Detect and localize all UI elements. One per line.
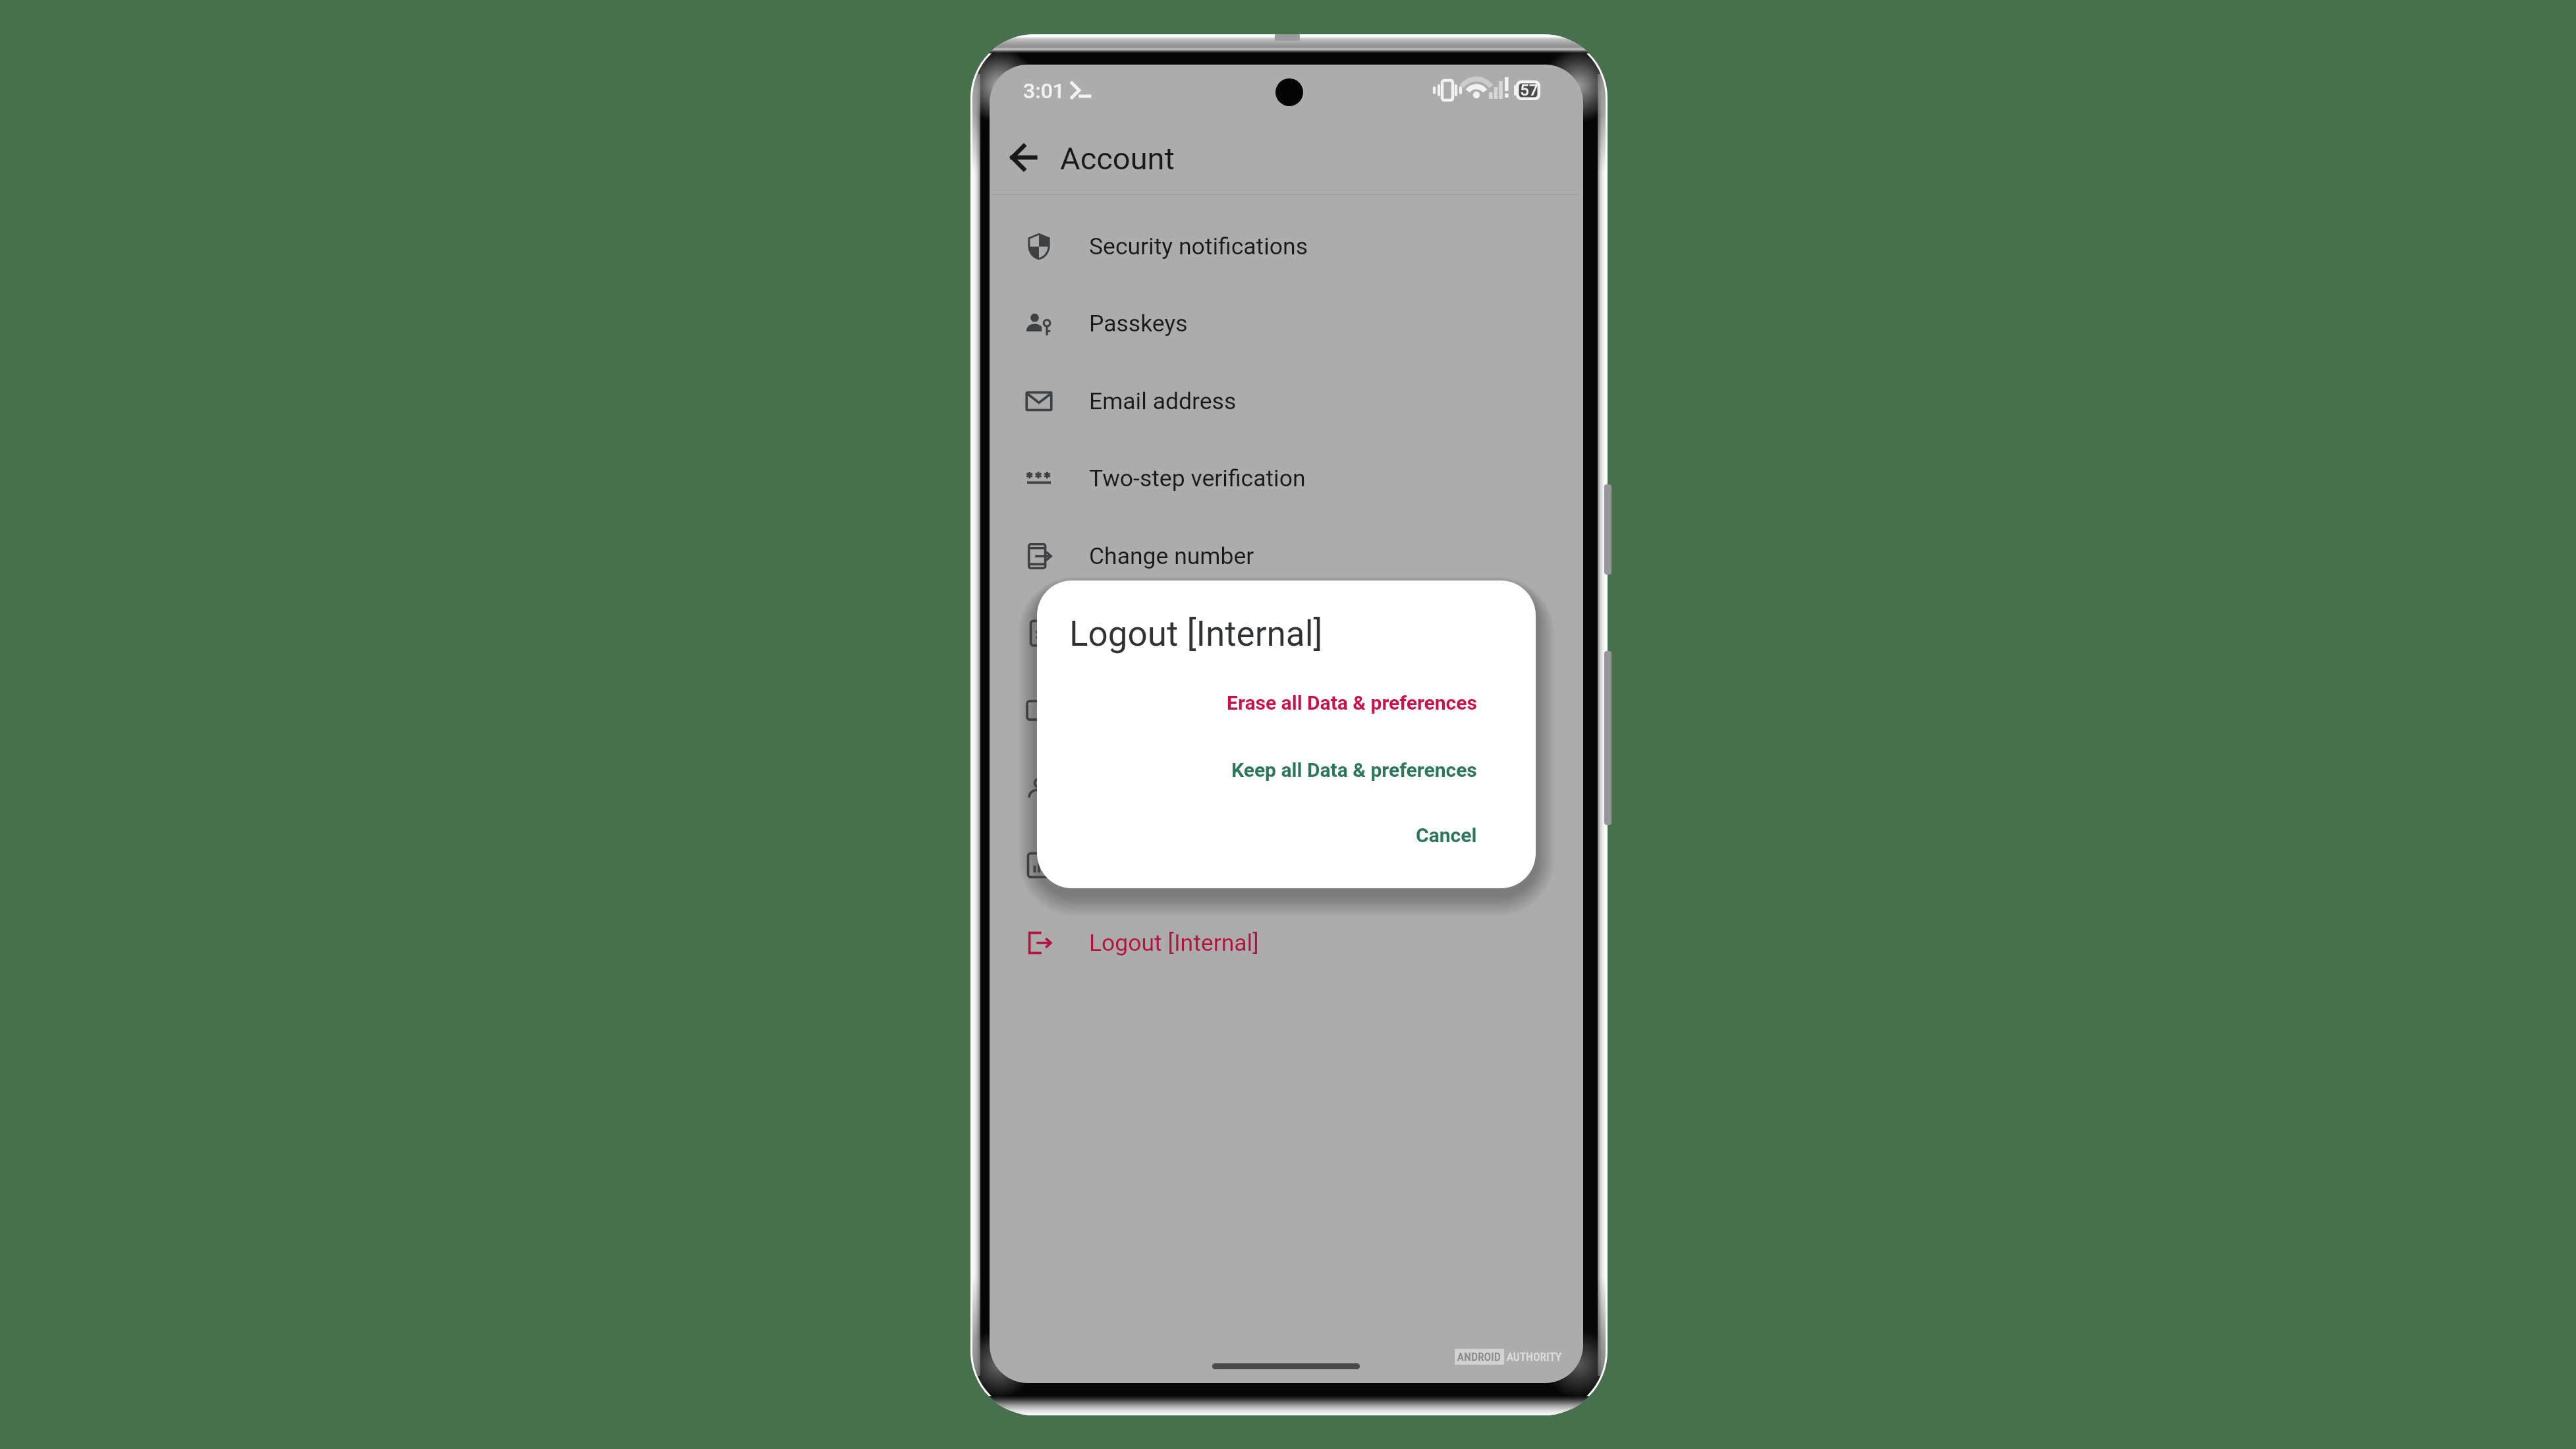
staticText: Request account info bbox=[1089, 619, 1310, 647]
staticText: Logout [Internal] bbox=[1069, 613, 1323, 654]
button[interactable]: Add account bbox=[990, 671, 1583, 749]
staticText: Change number bbox=[1089, 542, 1254, 570]
button[interactable]: Back bbox=[990, 128, 1050, 186]
button[interactable]: Erase all Data & preferences bbox=[1037, 674, 1536, 731]
staticText: Logout [Internal] bbox=[1089, 929, 1259, 957]
staticText: Keep all Data & preferences bbox=[1231, 758, 1477, 781]
button[interactable]: Logout [Internal] bbox=[990, 904, 1583, 981]
staticText: ANDROID bbox=[1457, 1350, 1501, 1363]
staticText: 57 bbox=[1520, 81, 1538, 99]
button[interactable]: Delete account bbox=[990, 749, 1583, 826]
staticText: Erase all Data & preferences bbox=[1227, 691, 1477, 714]
button[interactable]: Two-step verification bbox=[990, 440, 1583, 517]
staticText: Cancel bbox=[1416, 824, 1477, 847]
button[interactable]: Passkeys bbox=[990, 285, 1583, 362]
button[interactable]: Cancel bbox=[1037, 807, 1536, 863]
staticText: Two-step verification bbox=[1089, 465, 1306, 492]
button[interactable]: Keep all Data & preferences bbox=[1037, 741, 1536, 798]
button[interactable]: Request account info bbox=[990, 594, 1583, 671]
staticText: Email address bbox=[1089, 387, 1237, 415]
staticText: 3:01 bbox=[1023, 78, 1065, 103]
staticText: Passkeys bbox=[1089, 310, 1188, 337]
staticText: Security notifications bbox=[1089, 233, 1308, 260]
staticText: AUTHORITY bbox=[1507, 1350, 1562, 1363]
staticText: Account bbox=[1060, 140, 1175, 177]
button[interactable]: Email address bbox=[990, 362, 1583, 440]
button[interactable]: Security notifications bbox=[990, 208, 1583, 285]
staticText: Delete account bbox=[1089, 774, 1245, 802]
button[interactable]: Change number bbox=[990, 517, 1583, 594]
button[interactable]: Account info bbox=[990, 826, 1583, 903]
